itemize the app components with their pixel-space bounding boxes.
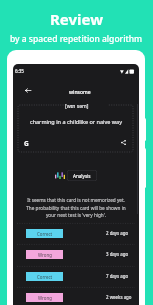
staticText: G [24, 139, 29, 148]
staticText: 2 days ago [106, 230, 129, 236]
staticText: Review [50, 9, 104, 29]
staticText: Wrong [38, 252, 52, 258]
button[interactable]: Wrong [13, 244, 139, 265]
staticText: 2 weeks ago [106, 294, 132, 300]
staticText: It seems that this card is not memorized… [25, 197, 127, 218]
staticText: Correct [37, 274, 53, 280]
button[interactable]: Correct [13, 266, 139, 287]
staticText: winsome [69, 89, 91, 96]
staticText: 3 days ago [106, 251, 129, 257]
staticText: Correct [37, 231, 53, 237]
staticText: 6:35 [15, 68, 24, 74]
staticText: charming in a childlike or naive way [30, 118, 122, 125]
staticText: 7 days ago [106, 273, 129, 279]
staticText: [wɪn səm] [65, 103, 89, 110]
staticText: by a spaced repetition algorithm [10, 33, 143, 45]
staticText: Wrong [38, 295, 52, 301]
button[interactable]: Correct [13, 223, 139, 244]
button[interactable]: Analysis [67, 170, 97, 181]
staticText: Analysis [73, 173, 91, 179]
button[interactable]: Share [118, 137, 128, 147]
button[interactable]: Back [22, 84, 34, 96]
button[interactable]: Wrong [13, 287, 139, 305]
